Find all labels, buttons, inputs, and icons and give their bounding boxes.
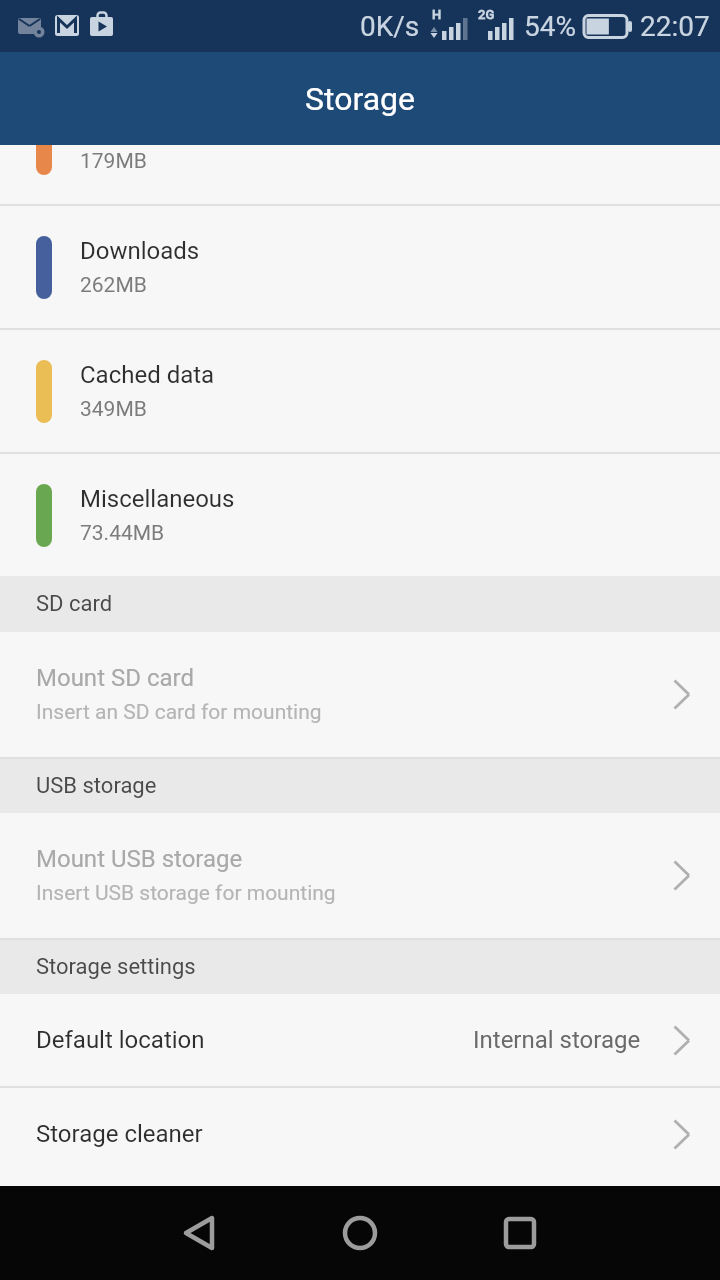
button[interactable] <box>180 1213 220 1253</box>
staticText: Storage cleaner <box>36 1120 203 1148</box>
staticText: 2G <box>478 7 495 22</box>
staticText: Downloads <box>80 237 200 265</box>
button[interactable]: Mount USB storage <box>0 813 720 938</box>
staticText: Storage settings <box>36 954 196 980</box>
button[interactable]: Storage cleaner <box>0 1088 720 1180</box>
staticText: USB storage <box>36 773 157 799</box>
staticText: 179MB <box>80 149 147 174</box>
staticText: Default location <box>36 1026 205 1054</box>
staticText: 262MB <box>80 273 147 298</box>
staticText: SD card <box>36 591 113 617</box>
staticText: 22:07 <box>640 10 710 43</box>
staticText: Internal storage <box>473 1026 641 1054</box>
button[interactable]: Cached data <box>0 330 720 452</box>
button[interactable]: Miscellaneous <box>0 454 720 576</box>
staticText: Miscellaneous <box>80 485 235 513</box>
staticText: 349MB <box>80 397 147 422</box>
staticText: Insert USB storage for mounting <box>36 881 336 906</box>
button[interactable] <box>340 1213 380 1253</box>
staticText: Mount SD card <box>36 664 194 692</box>
staticText: 73.44MB <box>80 521 165 546</box>
staticText: Insert an SD card for mounting <box>36 700 322 725</box>
staticText: Storage <box>305 80 415 118</box>
button[interactable]: Mount SD card <box>0 632 720 757</box>
staticText: 54% <box>524 10 576 43</box>
button[interactable]: Pictures <box>0 82 720 204</box>
staticText: Cached data <box>80 361 215 389</box>
staticText: Mount USB storage <box>36 845 243 873</box>
button[interactable] <box>500 1213 540 1253</box>
staticText: H <box>432 7 442 22</box>
button[interactable]: Default location <box>0 994 720 1086</box>
staticText: 0K/s <box>360 10 420 43</box>
button[interactable]: Downloads <box>0 206 720 328</box>
